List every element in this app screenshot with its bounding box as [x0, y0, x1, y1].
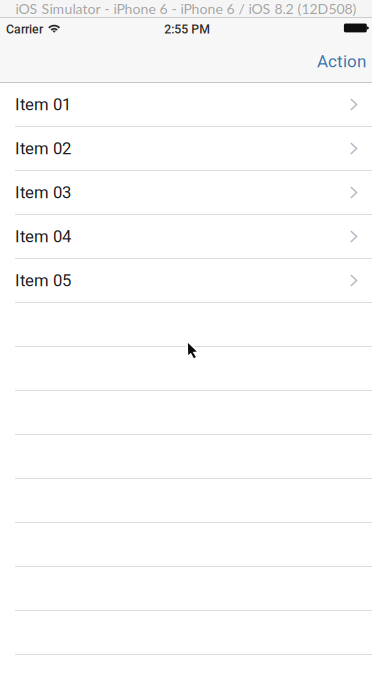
staticText: Item 05 — [15, 271, 71, 290]
staticText: Item 01 — [15, 95, 71, 114]
staticText: iOS Simulator - iPhone 6 - iPhone 6 / iO… — [15, 0, 356, 17]
staticText: Item 03 — [15, 183, 71, 202]
staticText: 2:55 PM — [164, 22, 210, 36]
button[interactable]: Item 01 — [0, 83, 372, 127]
button[interactable]: Item 04 — [0, 215, 372, 259]
button[interactable]: Item 03 — [0, 171, 372, 215]
button[interactable]: Action — [305, 38, 372, 82]
staticText: Item 02 — [15, 139, 71, 158]
button[interactable]: Item 05 — [0, 259, 372, 303]
staticText: Item 04 — [15, 227, 71, 246]
staticText: Action — [317, 51, 366, 71]
button[interactable]: Item 02 — [0, 127, 372, 171]
staticText: Carrier — [6, 22, 43, 36]
